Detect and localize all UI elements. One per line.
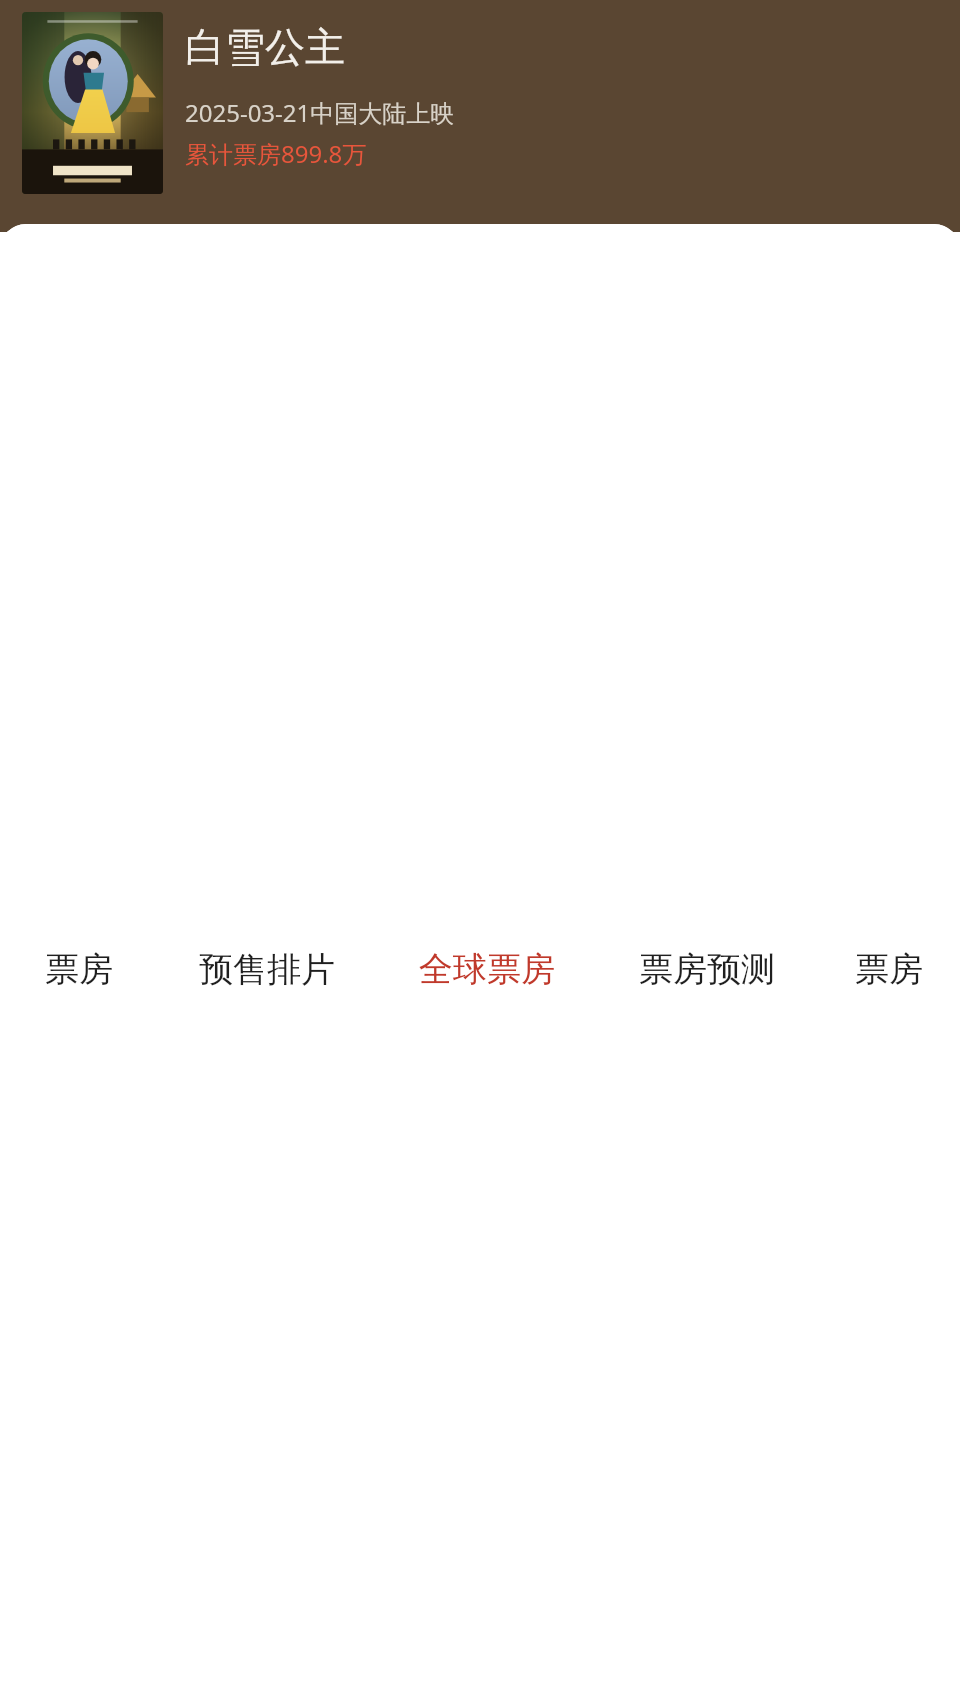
button[interactable]: 预售排片 <box>157 254 377 1684</box>
button[interactable]: 票房预测 <box>597 254 817 1684</box>
button[interactable]: 票房 <box>817 254 960 1684</box>
button[interactable]: 票房 <box>0 254 157 1684</box>
staticText: 票房 <box>855 948 923 991</box>
staticText: 预售排片 <box>199 948 335 991</box>
staticText: 票房 <box>45 948 113 991</box>
staticText: 2025-03-21中国大陆上映 <box>185 96 455 129</box>
staticText: 票房预测 <box>639 948 775 991</box>
staticText: 白雪公主 <box>185 22 345 72</box>
staticText: 累计票房899.8万 <box>185 137 367 170</box>
button[interactable]: 全球票房 <box>377 254 597 1684</box>
staticText: 全球票房 <box>419 948 555 991</box>
